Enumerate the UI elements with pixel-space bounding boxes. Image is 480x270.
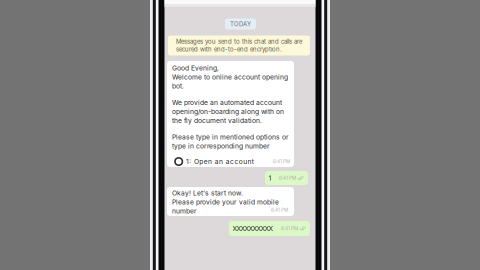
button[interactable]: TODAY	[225, 18, 256, 29]
staticText: 6:41 PM	[271, 207, 288, 213]
button[interactable]: Messages you send to this chat and calls…	[168, 35, 310, 55]
staticText: 6:41 PM	[281, 226, 298, 231]
staticText: Messages you send to this chat and calls…	[176, 38, 302, 53]
staticText: XXXXXXXXXX	[232, 224, 273, 233]
staticText: TODAY	[230, 20, 251, 28]
button[interactable]: 1: Open an account	[172, 156, 290, 166]
staticText: 1: Open an account	[186, 157, 254, 166]
staticText: We provide an automated account opening/…	[172, 98, 284, 124]
staticText: 6:41 PM	[273, 159, 290, 164]
staticText: Okay! Let's start now. Please provide yo…	[172, 189, 279, 215]
staticText: Good Evening, Welcome to online account …	[172, 64, 288, 90]
staticText: Please type in mentioned options or type…	[172, 133, 289, 150]
staticText: 6:41 PM	[279, 175, 296, 181]
staticText: 1	[268, 174, 271, 182]
